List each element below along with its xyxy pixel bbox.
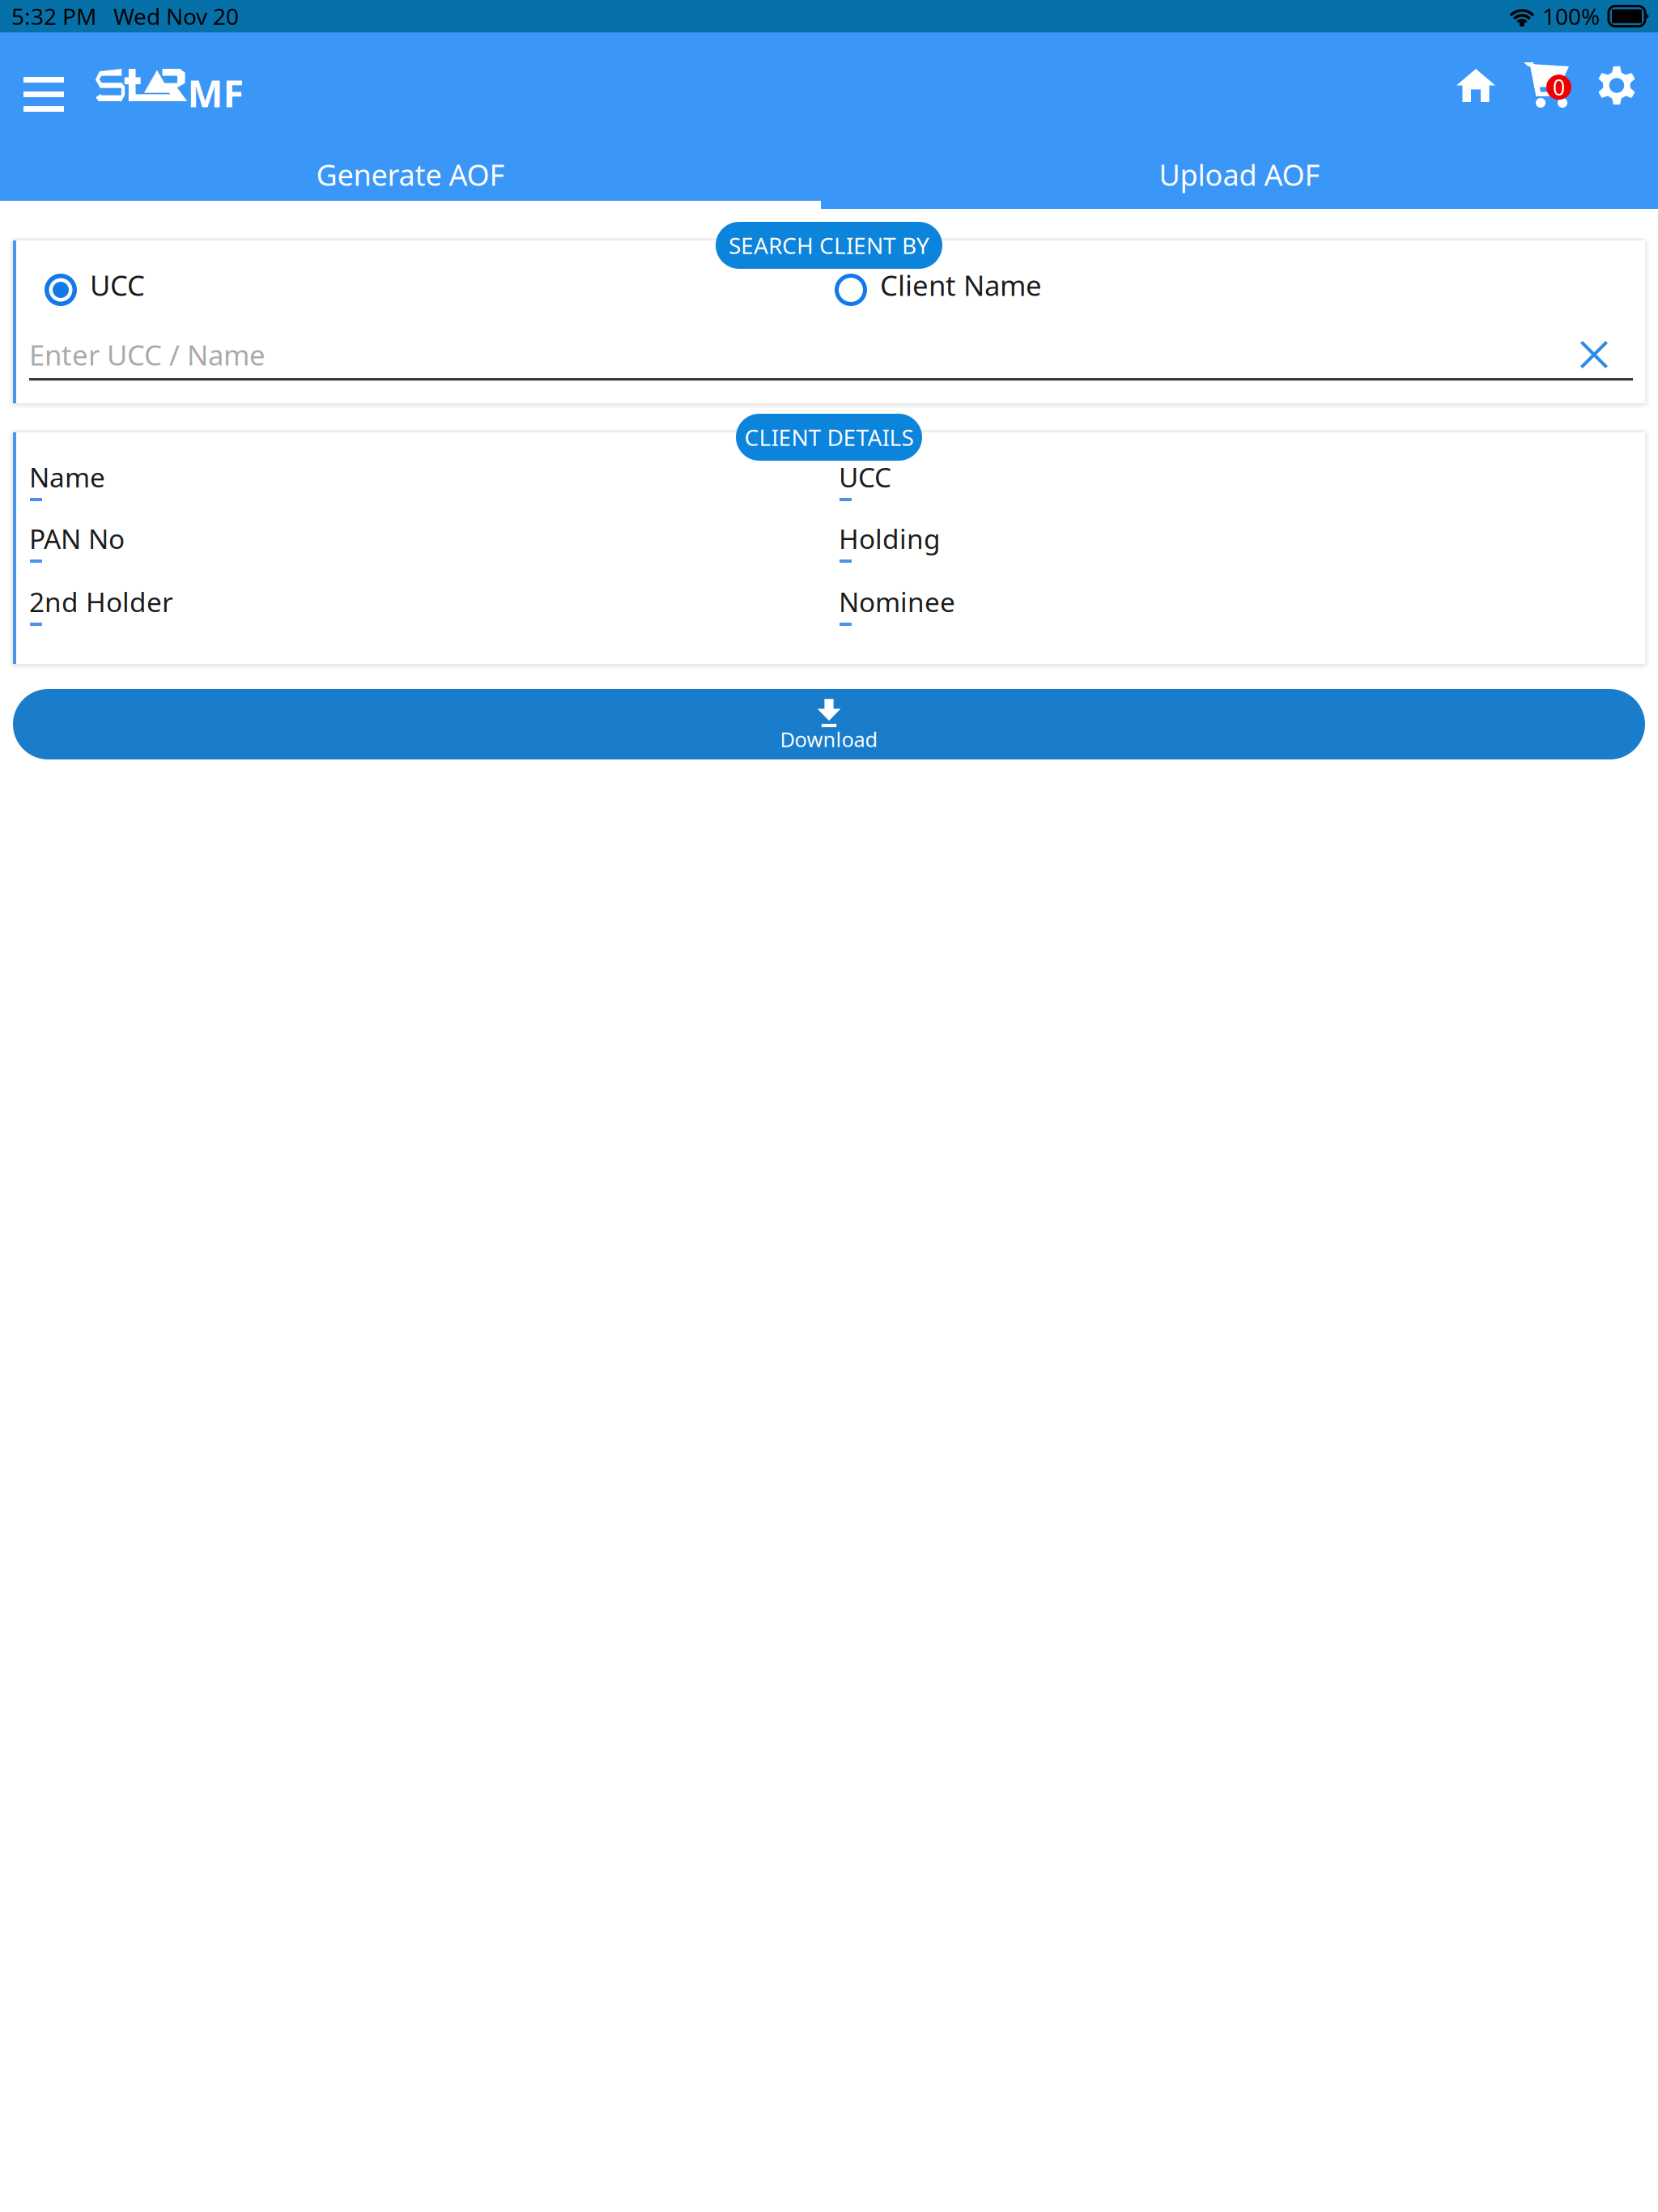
button[interactable]: Home <box>1437 49 1515 121</box>
staticText: Client Name <box>880 266 1042 304</box>
staticText: MF <box>187 68 244 118</box>
staticText: Name <box>29 459 105 495</box>
staticText: 0 <box>1553 73 1565 102</box>
staticText: Enter UCC / Name <box>29 336 266 373</box>
staticText: Nominee <box>839 584 955 620</box>
button[interactable]: Upload AOF <box>821 152 1658 197</box>
staticText: CLIENT DETAILS <box>744 422 914 452</box>
staticText: UCC <box>839 459 891 495</box>
staticText: Wed Nov 20 <box>96 1 239 31</box>
button[interactable]: Client Name <box>835 268 1272 302</box>
staticText: Generate AOF <box>316 155 505 194</box>
button[interactable]: Generate AOF <box>0 152 821 197</box>
staticText: 5:32 PM <box>11 1 96 31</box>
button[interactable]: UCC <box>45 268 417 302</box>
staticText: PAN No <box>29 521 125 556</box>
button[interactable]: Download <box>13 689 1645 759</box>
staticText: 2nd Holder <box>29 584 173 620</box>
staticText: Upload AOF <box>1159 155 1320 194</box>
button[interactable]: Settings <box>1578 49 1656 121</box>
staticText: 100% <box>1542 1 1600 31</box>
button[interactable]: Cart, 0 items <box>1507 49 1585 121</box>
staticText: Holding <box>839 521 941 556</box>
staticText: SEARCH CLIENT BY <box>729 230 929 260</box>
button[interactable]: Menu <box>0 32 87 156</box>
staticText: UCC <box>90 266 145 304</box>
button[interactable]: Clear search field <box>1568 329 1620 381</box>
staticText: Download <box>780 726 878 753</box>
